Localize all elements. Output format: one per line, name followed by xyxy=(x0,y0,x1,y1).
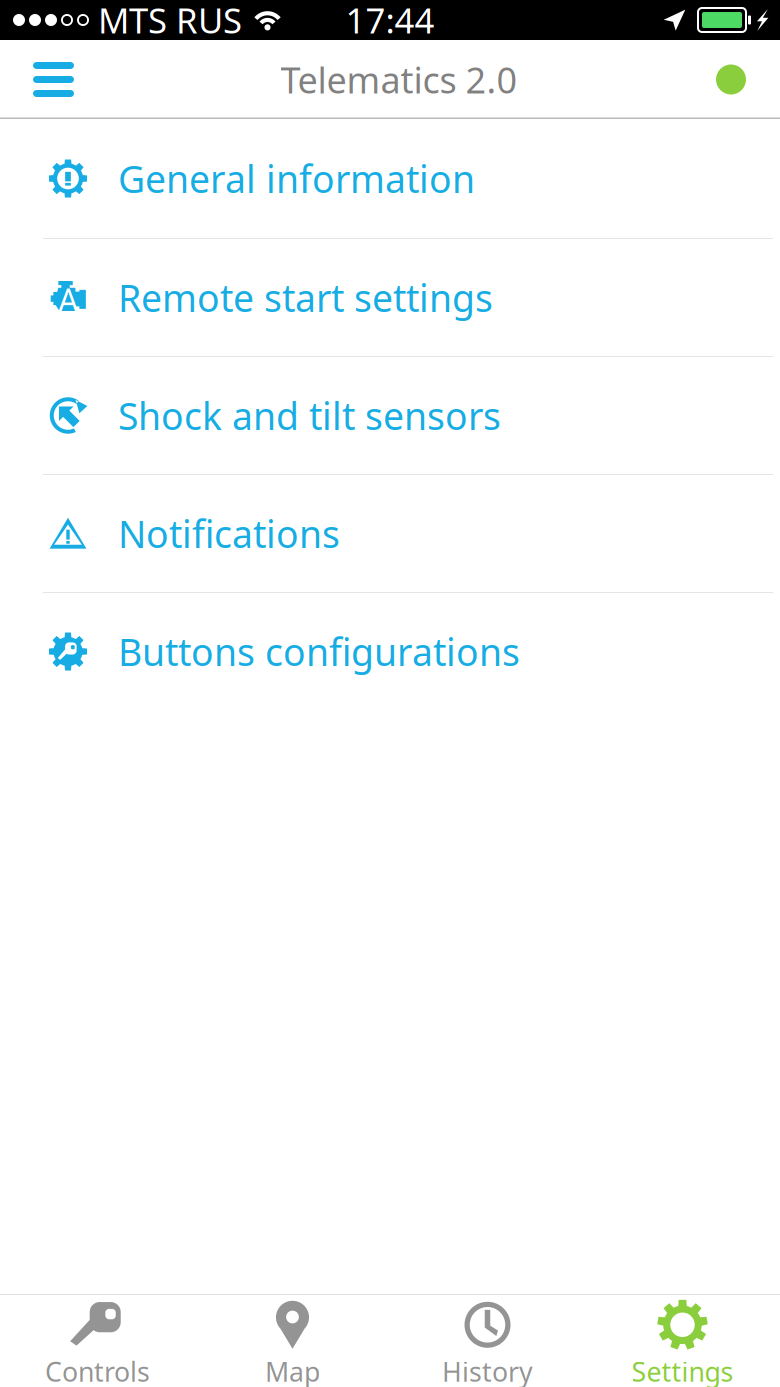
staticText: A xyxy=(58,279,78,321)
staticText: 17:44 xyxy=(345,0,434,43)
button[interactable]: History xyxy=(390,1294,585,1387)
button[interactable]: Shock and tilt sensors xyxy=(0,357,780,474)
staticText: History xyxy=(442,1354,533,1387)
staticText: Telematics 2.0 xyxy=(280,56,517,103)
button[interactable]: A xyxy=(0,239,780,356)
button[interactable]: General information xyxy=(0,119,780,238)
button[interactable]: Connection status xyxy=(682,40,780,119)
button[interactable]: Menu xyxy=(0,40,107,119)
staticText: MTS RUS xyxy=(98,0,242,43)
staticText: General information xyxy=(118,154,475,203)
staticText: Settings xyxy=(631,1354,733,1387)
button[interactable]: Buttons configurations xyxy=(0,593,780,710)
staticText: Remote start settings xyxy=(118,273,493,322)
staticText: Map xyxy=(265,1354,320,1387)
button[interactable]: Notifications xyxy=(0,475,780,592)
staticText: Controls xyxy=(45,1354,150,1387)
button[interactable]: Map xyxy=(195,1294,390,1387)
staticText: Buttons configurations xyxy=(118,627,520,676)
button[interactable]: Settings xyxy=(585,1294,780,1387)
button[interactable]: Controls xyxy=(0,1294,195,1387)
staticText: Shock and tilt sensors xyxy=(118,391,501,440)
staticText: Notifications xyxy=(118,509,340,558)
